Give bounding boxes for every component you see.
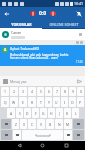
button[interactable]: Q [1,97,9,107]
button[interactable]: Symbols [1,130,12,140]
staticText: 3 [22,89,24,94]
button[interactable]: B [46,119,54,129]
button[interactable]: Recents [62,141,71,150]
staticText: 9 [72,89,74,94]
staticText: 6 [48,89,50,94]
staticText: 7 [56,89,58,94]
staticText: Q [4,100,7,105]
staticText: C [31,122,34,127]
button[interactable]: Mute notifications [72,7,85,20]
staticText: H [50,111,53,116]
button[interactable]: 1 [1,87,9,96]
button[interactable]: Space [22,130,63,140]
button[interactable]: D [24,108,31,118]
staticText: ONLINE SOHBET [49,22,79,27]
staticText: Y [48,100,50,105]
staticText: 4 [31,89,33,94]
button[interactable]: Emoji [13,130,21,140]
staticText: 1 [4,89,6,94]
button[interactable]: F [32,108,39,118]
staticText: 10:41 [74,1,83,6]
button[interactable]: More options [78,32,83,37]
staticText: N [58,122,61,127]
button[interactable]: 4 [28,87,36,96]
staticText: Bohusbbasd abi çok kazandıran bahis foru… [10,52,69,60]
button[interactable]: 5 [37,87,44,96]
button[interactable]: P [77,97,84,107]
staticText: E [22,100,24,105]
staticText: A [10,111,13,116]
button[interactable]: 2 [10,87,18,96]
staticText: F [35,111,37,116]
staticText: W [12,100,16,105]
button[interactable]: R [28,97,36,107]
staticText: M [66,122,70,127]
button[interactable]: N [55,119,63,129]
button[interactable]: C [28,119,36,129]
staticText: U [55,100,58,105]
staticText: X [23,122,25,127]
staticText: R [31,100,34,105]
button[interactable]: Enter [73,130,84,140]
button[interactable]: 9 [69,87,76,96]
button[interactable]: L [72,108,79,118]
button[interactable]: X [20,119,27,129]
button[interactable]: Back [0,7,13,20]
staticText: D [26,111,29,116]
staticText: I [64,100,66,105]
staticText: 0:0 [39,10,47,17]
staticText: 5 [40,89,42,94]
button[interactable]: Shift [1,119,11,129]
button[interactable]: U [53,97,60,107]
button[interactable]: 0 [77,87,84,96]
staticText: 0 [80,89,82,94]
button[interactable]: Attach [2,78,8,84]
button[interactable]: S [16,108,23,118]
button[interactable]: 6 [45,87,52,96]
button[interactable]: Y [45,97,52,107]
button[interactable]: Back [15,141,24,150]
staticText: L [75,111,77,116]
staticText: Aykut Trabzon4€O [10,47,40,51]
button[interactable]: M [64,119,72,129]
button[interactable]: Backspace [73,119,84,129]
staticText: T [40,100,42,105]
staticText: YORUMLAR [11,22,32,27]
staticText: Mesaj yaz [10,79,76,84]
staticText: G [42,111,45,116]
button[interactable]: J [56,108,63,118]
staticText: J [59,111,60,116]
button[interactable]: 3 [19,87,27,96]
button[interactable]: A [7,108,15,118]
staticText: 8 [64,89,66,94]
button[interactable]: E [19,97,27,107]
staticText: A [4,48,7,52]
button[interactable]: W [10,97,18,107]
button[interactable]: YORUMLAR [0,20,42,28]
button[interactable]: H [48,108,55,118]
staticText: S [19,111,21,116]
button[interactable]: T [37,97,44,107]
staticText: 17:36 [76,60,83,64]
staticText: O [71,100,74,105]
button[interactable]: 8 [61,87,68,96]
button[interactable]: I [61,97,68,107]
button[interactable]: ONLINE SOHBET [42,20,85,28]
button[interactable]: Canan [0,29,85,40]
staticText: K [66,111,69,116]
staticText: 2 [13,89,15,94]
button[interactable]: G [40,108,47,118]
staticText: Canan [11,30,22,35]
button[interactable]: 7 [53,87,60,96]
staticText: V [40,122,43,127]
button[interactable]: Send [76,78,83,85]
button[interactable]: K [64,108,71,118]
staticText: P [79,100,82,105]
button[interactable]: Period [64,130,72,140]
button[interactable]: Home [38,141,47,150]
button[interactable]: A [0,45,85,66]
button[interactable]: O [69,97,76,107]
staticText: Z [15,122,17,127]
button[interactable]: Z [12,119,19,129]
button[interactable]: V [37,119,45,129]
